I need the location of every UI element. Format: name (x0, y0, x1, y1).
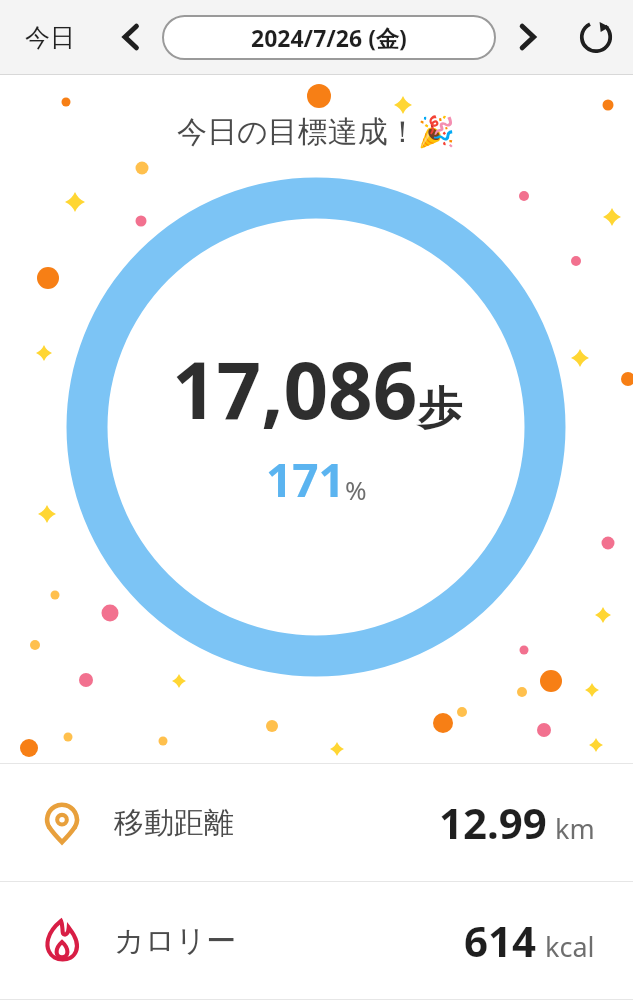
button[interactable]: Previous day (100, 0, 162, 74)
staticText: kcal (545, 928, 595, 965)
staticText: 2024/7/26 (金) (251, 22, 407, 53)
button[interactable]: 2024/7/26 (金) (162, 15, 496, 60)
staticText: 歩 (418, 381, 462, 436)
button[interactable]: Next day (496, 0, 558, 74)
staticText: 移動距離 (114, 804, 234, 842)
staticText: 17,086 (172, 336, 418, 442)
staticText: km (555, 810, 595, 847)
button[interactable]: 移動距離 (0, 764, 633, 881)
button[interactable]: 今日 (0, 0, 100, 74)
staticText: % (345, 472, 367, 507)
staticText: 171 (266, 448, 345, 511)
staticText: 12.99 (439, 794, 547, 851)
staticText: カロリー (114, 922, 237, 960)
button[interactable]: カロリー (0, 882, 633, 999)
staticText: 614 (464, 912, 537, 969)
button[interactable]: Refresh (558, 0, 633, 74)
staticText: 今日 (25, 22, 75, 53)
staticText: 今日の目標達成！🎉 (177, 113, 456, 151)
